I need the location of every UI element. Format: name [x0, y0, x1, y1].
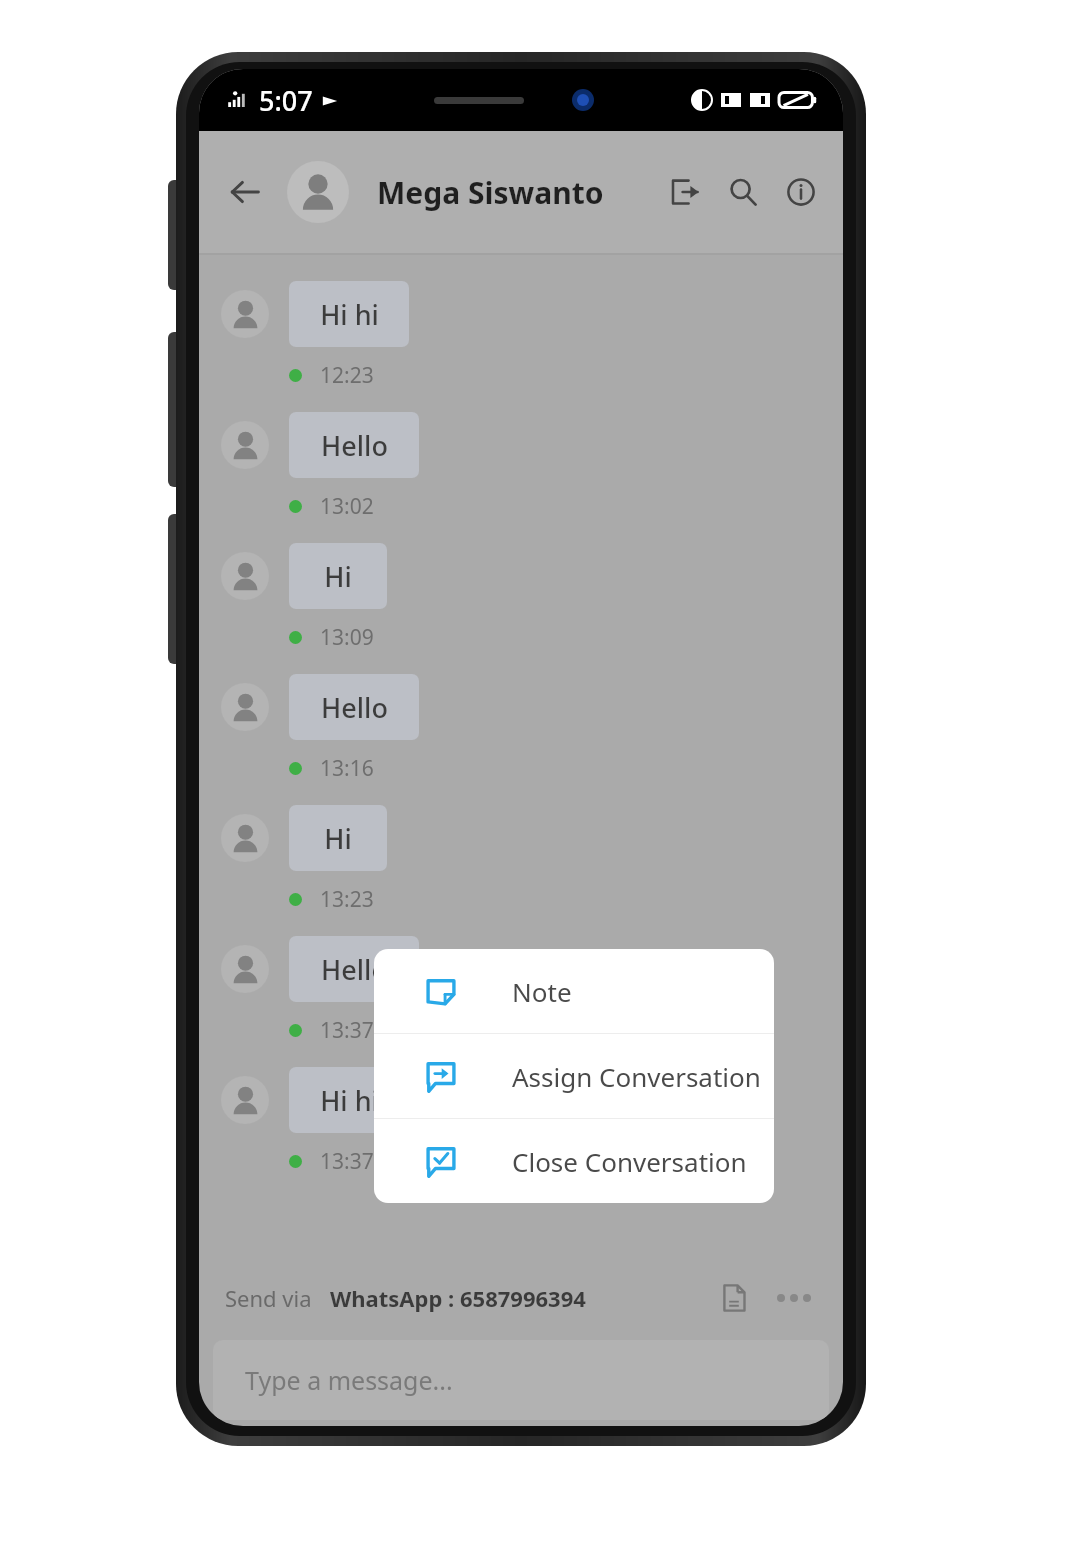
staticText: Hi [324, 558, 352, 595]
staticText: 13:37 [320, 1147, 374, 1176]
staticText: Mega Siswanto [377, 172, 604, 213]
button[interactable]: Back [217, 164, 273, 220]
staticText: 5:07 [259, 82, 313, 119]
staticText: Hello [321, 689, 388, 726]
button[interactable]: Assign Conversation [374, 1034, 774, 1118]
button[interactable]: More options [771, 1275, 817, 1321]
staticText: 12:23 [320, 361, 374, 390]
staticText: 13:16 [320, 754, 374, 783]
staticText: Close Conversation [512, 1144, 747, 1179]
staticText: Assign Conversation [512, 1059, 761, 1094]
button[interactable]: Note [374, 949, 774, 1033]
button[interactable]: WhatsApp : 6587996394 [330, 1283, 586, 1313]
staticText: Type a message... [245, 1363, 453, 1397]
staticText: Note [512, 974, 572, 1009]
staticText: 13:37 [320, 1016, 374, 1045]
button[interactable]: Hi [199, 543, 843, 674]
button[interactable]: Type a message... [213, 1340, 829, 1420]
staticText: 13:23 [320, 885, 374, 914]
staticText: 13:02 [320, 492, 374, 521]
button[interactable]: Hi [199, 805, 843, 936]
staticText: Hi [324, 820, 352, 857]
button[interactable] [287, 161, 349, 223]
button[interactable]: Hello [199, 674, 843, 805]
staticText: WhatsApp : 6587996394 [330, 1283, 586, 1313]
staticText: 13:09 [320, 623, 374, 652]
button[interactable]: Close Conversation [374, 1119, 774, 1203]
button[interactable]: Search [717, 166, 769, 218]
button[interactable]: Attach template [711, 1275, 757, 1321]
button[interactable]: Info [775, 166, 827, 218]
button[interactable]: Transfer [659, 166, 711, 218]
staticText: Hello [321, 951, 388, 988]
staticText: Send via [225, 1283, 312, 1313]
staticText: Hi hi [320, 1082, 379, 1119]
button[interactable]: Hello [199, 412, 843, 543]
button[interactable]: Hello [199, 936, 843, 1067]
staticText: Hello [321, 427, 388, 464]
staticText: Hi hi [320, 296, 379, 333]
button[interactable]: Hi hi [199, 1067, 843, 1198]
button[interactable]: Hi hi [199, 281, 843, 412]
